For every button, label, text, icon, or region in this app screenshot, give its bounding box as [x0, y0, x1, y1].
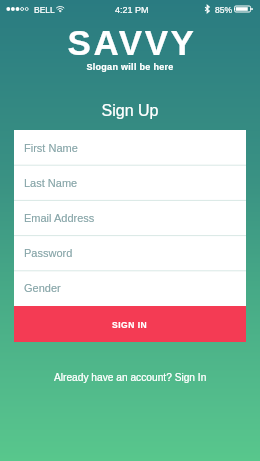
staticText: BELL: [34, 5, 55, 14]
button[interactable]: First Name: [14, 130, 246, 165]
staticText: 85%: [215, 5, 233, 14]
button[interactable]: Email Address: [14, 200, 246, 235]
staticText: SIGN IN: [112, 320, 148, 329]
button[interactable]: SIGN IN: [14, 306, 246, 342]
staticText: 4:21 PM: [115, 5, 149, 15]
button[interactable]: Already have an account? Sign In: [0, 368, 260, 386]
button[interactable]: Gender: [14, 270, 246, 305]
staticText: Slogan will be here: [0, 62, 260, 72]
staticText: Gender: [24, 282, 61, 294]
button[interactable]: Last Name: [14, 165, 246, 200]
staticText: Password: [24, 247, 73, 259]
staticText: First Name: [24, 142, 78, 154]
staticText: SAVVY: [2, 23, 260, 62]
staticText: Already have an account? Sign In: [54, 372, 207, 383]
staticText: Sign Up: [0, 102, 260, 120]
button[interactable]: Password: [14, 235, 246, 270]
staticText: Last Name: [24, 177, 78, 189]
staticText: Email Address: [24, 212, 95, 224]
